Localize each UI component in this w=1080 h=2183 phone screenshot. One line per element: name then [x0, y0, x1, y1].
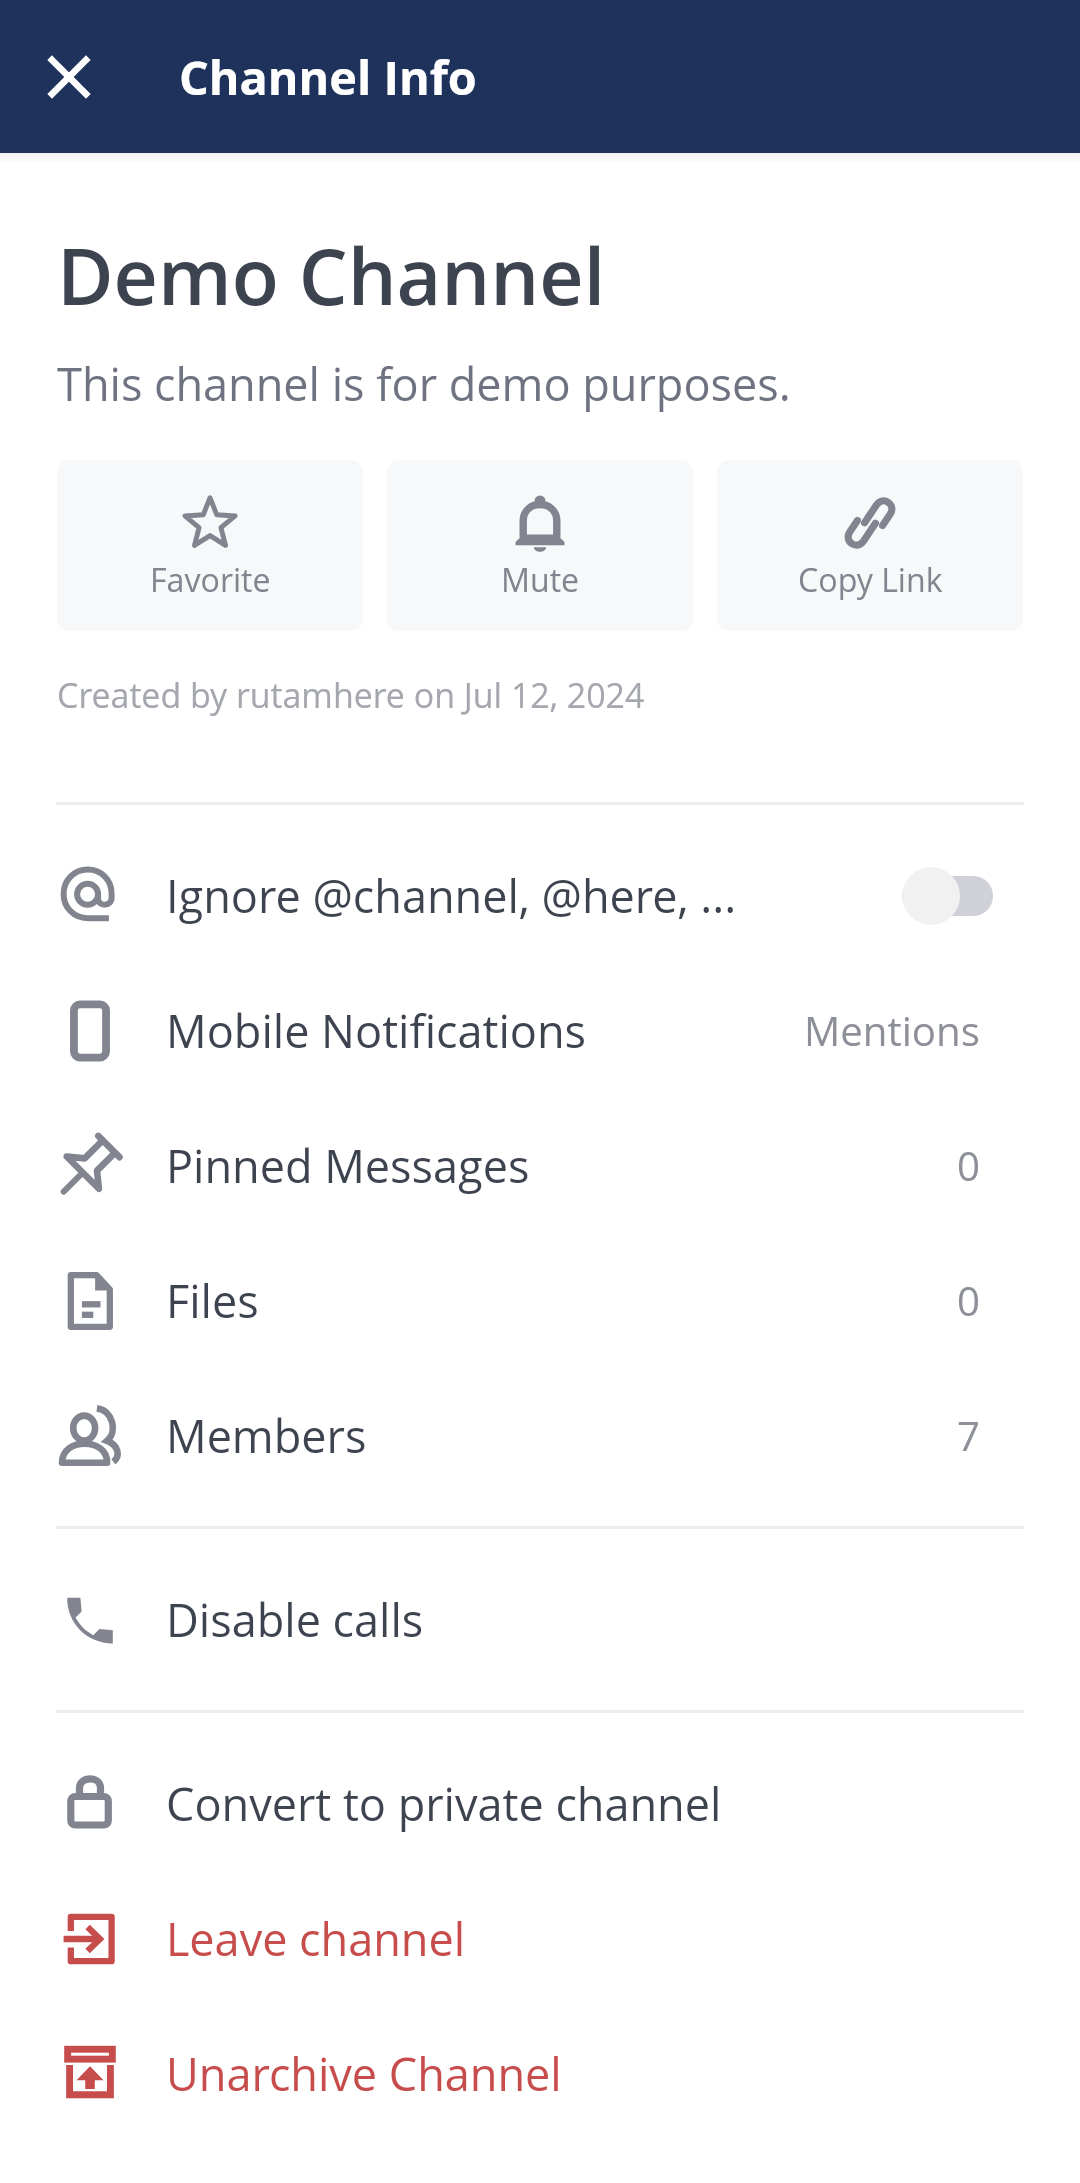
staticText: Convert to private channel [166, 1773, 722, 1834]
staticText: Pinned Messages [166, 1135, 530, 1196]
button[interactable]: Close [9, 17, 129, 137]
staticText: Copy Link [798, 558, 943, 602]
staticText: Mobile Notifications [166, 1000, 587, 1061]
button[interactable]: Leave channel [0, 1871, 1080, 2006]
staticText: Mentions [804, 1003, 980, 1058]
button[interactable]: Disable calls [0, 1552, 1080, 1687]
button[interactable]: Convert to private channel [0, 1736, 1080, 1871]
button[interactable]: Pinned Messages [0, 1098, 1080, 1233]
button[interactable]: Mute [387, 460, 693, 631]
staticText: Mute [501, 558, 580, 602]
button[interactable]: Mobile Notifications [0, 963, 1080, 1098]
button[interactable]: Unarchive Channel [0, 2006, 1080, 2141]
staticText: Unarchive Channel [166, 2043, 562, 2104]
button[interactable]: Members [0, 1368, 1080, 1503]
button[interactable]: Ignore @channel, @here, ... [0, 828, 1080, 963]
staticText: 7 [957, 1408, 980, 1463]
staticText: 0 [957, 1138, 980, 1193]
staticText: Demo Channel [57, 223, 606, 328]
staticText: Ignore @channel, @here, ... [166, 865, 737, 926]
staticText: Members [166, 1405, 367, 1466]
staticText: Channel Info [179, 45, 477, 109]
button[interactable]: Favorite [57, 460, 363, 631]
staticText: Created by rutamhere on Jul 12, 2024 [57, 672, 645, 718]
staticText: Disable calls [166, 1589, 424, 1650]
staticText: 0 [957, 1273, 980, 1328]
staticText: Favorite [150, 558, 271, 602]
button[interactable]: Files [0, 1233, 1080, 1368]
staticText: This channel is for demo purposes. [57, 353, 791, 414]
button[interactable]: Copy Link [717, 460, 1023, 631]
staticText: Leave channel [166, 1908, 466, 1969]
staticText: Files [166, 1270, 259, 1331]
